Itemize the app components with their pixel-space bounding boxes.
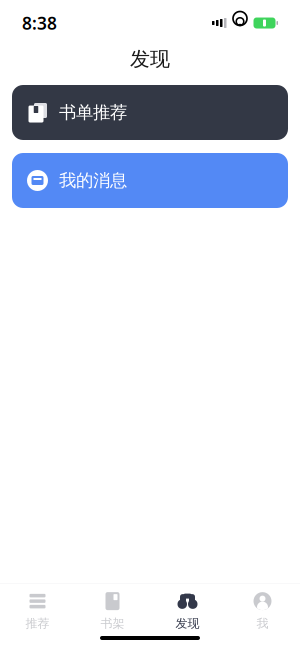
button[interactable]: 书单推荐	[12, 85, 288, 140]
button[interactable]: 推荐	[0, 589, 75, 633]
staticText: 我的消息	[59, 170, 127, 191]
staticText: 书架	[100, 616, 124, 631]
button[interactable]: 我	[225, 589, 300, 633]
staticText: 8:38	[22, 11, 57, 34]
staticText: 推荐	[25, 616, 49, 631]
staticText: 书单推荐	[59, 102, 127, 123]
staticText: 发现	[130, 47, 170, 71]
button[interactable]: 发现	[150, 589, 225, 633]
button[interactable]: 我的消息	[12, 153, 288, 208]
staticText: 我	[256, 616, 268, 631]
button[interactable]: 书架	[75, 589, 150, 633]
staticText: 发现	[175, 616, 199, 631]
